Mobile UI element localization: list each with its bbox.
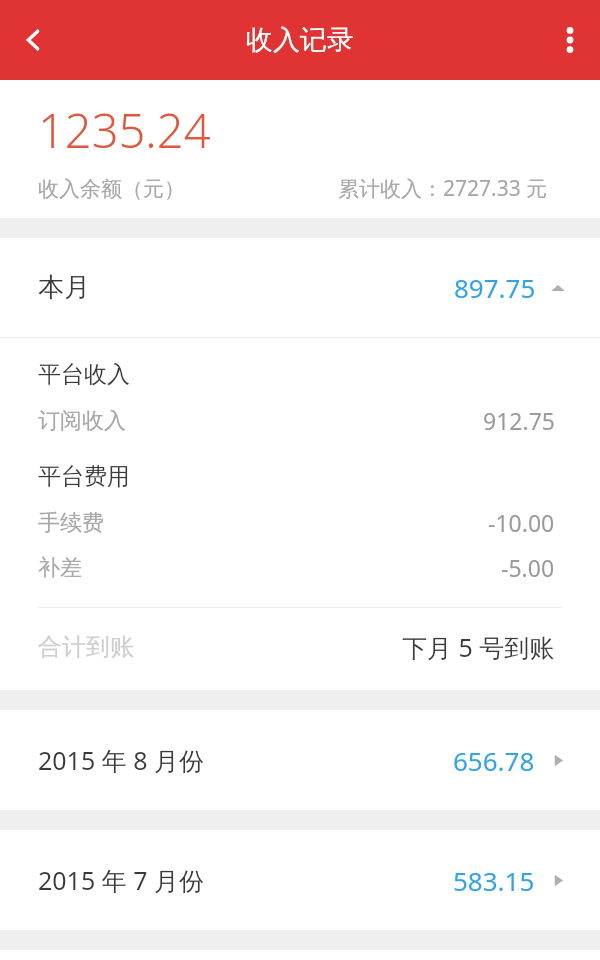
- button[interactable]: 2015 年 8 月份: [0, 710, 600, 810]
- staticText: 订阅收入: [38, 407, 126, 435]
- staticText: 平台费用: [38, 462, 130, 491]
- staticText: 合计到账: [38, 632, 134, 662]
- staticText: 2015 年 8 月份: [38, 743, 205, 777]
- button[interactable]: Back: [0, 0, 66, 80]
- button[interactable]: 本月: [0, 238, 600, 337]
- staticText: 下月 5 号到账: [402, 630, 555, 664]
- staticText: 656.78: [453, 743, 535, 778]
- button[interactable]: More options: [540, 0, 600, 80]
- staticText: 收入余额（元）: [38, 176, 185, 202]
- button[interactable]: 2015 年 7 月份: [0, 830, 600, 930]
- staticText: 补差: [38, 554, 82, 582]
- staticText: 收入记录: [246, 23, 354, 57]
- staticText: 583.15: [453, 863, 535, 898]
- staticText: -10.00: [488, 507, 555, 538]
- staticText: 912.75: [483, 405, 555, 436]
- staticText: 本月: [38, 271, 90, 304]
- staticText: 累计收入：2727.33 元: [338, 174, 548, 203]
- staticText: 2015 年 7 月份: [38, 863, 205, 897]
- staticText: 1235.24: [38, 98, 211, 162]
- staticText: -5.00: [501, 552, 555, 583]
- staticText: 手续费: [38, 509, 104, 537]
- staticText: 平台收入: [38, 360, 130, 389]
- staticText: 897.75: [454, 270, 536, 305]
